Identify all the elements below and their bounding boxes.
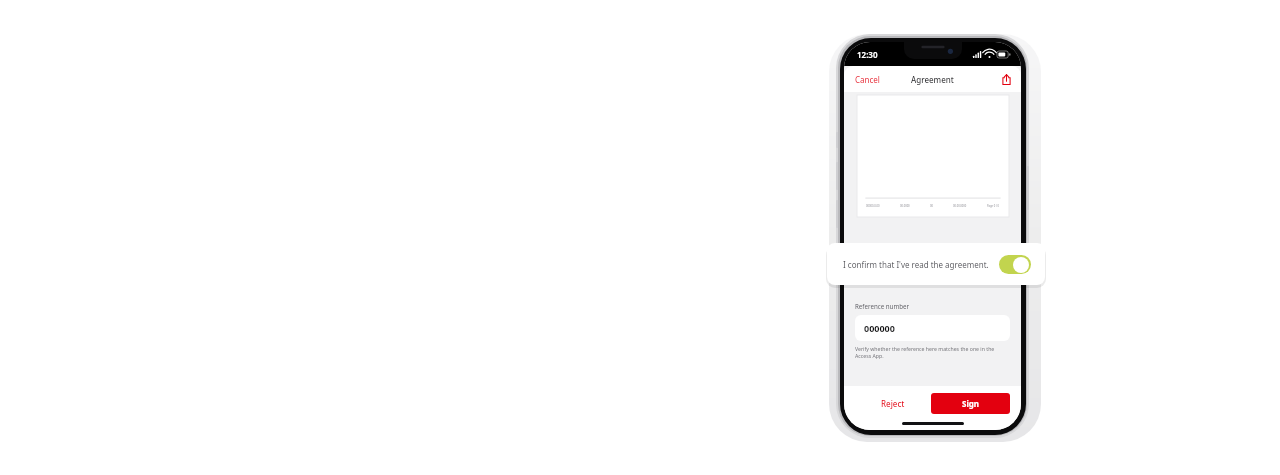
button[interactable]: I confirm that I've read the agreement xyxy=(999,255,1031,274)
staticText: Agreement xyxy=(911,74,954,85)
staticText: Reference number xyxy=(855,302,910,310)
button[interactable]: 000000 xyxy=(855,315,1010,341)
staticText: Page 0 / 0 xyxy=(987,204,1000,208)
staticText: 000000 xyxy=(864,322,895,334)
staticText: Sign xyxy=(962,398,980,409)
staticText: 00.0000 xyxy=(900,204,910,208)
button[interactable]: Cancel xyxy=(844,69,891,90)
staticText: I confirm that I've read the agreement. xyxy=(843,259,989,270)
staticText: 00 xyxy=(930,204,933,208)
button[interactable]: Sign xyxy=(931,393,1010,414)
button[interactable]: Share xyxy=(992,70,1021,89)
staticText: Verify whether the reference here matche… xyxy=(855,345,1002,360)
button[interactable]: Reject xyxy=(855,393,931,414)
staticText: 00.00.0000 xyxy=(953,204,967,208)
staticText: 12:30 xyxy=(857,49,878,60)
staticText: Cancel xyxy=(855,74,880,85)
staticText: Reject xyxy=(881,398,905,409)
button[interactable]: I confirm that I've read the agreement. xyxy=(827,243,1045,285)
staticText: 00000-0-00 xyxy=(866,204,880,208)
